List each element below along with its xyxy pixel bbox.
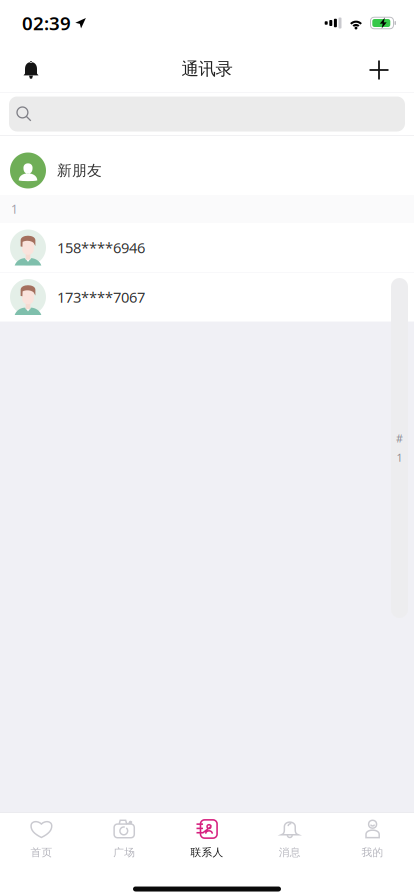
button[interactable]: 消息 xyxy=(248,813,331,862)
button[interactable]: 添加联系人 xyxy=(357,47,401,91)
staticText: 首页 xyxy=(30,846,52,859)
button[interactable]: 索引 xyxy=(391,278,408,618)
staticText: 1 xyxy=(396,450,402,465)
button[interactable]: 173****7067 xyxy=(0,272,414,321)
staticText: 173****7067 xyxy=(57,287,145,307)
staticText: 新朋友 xyxy=(57,161,102,179)
staticText: # xyxy=(396,431,403,445)
button[interactable]: 通知 xyxy=(9,47,53,91)
button[interactable]: 联系人 xyxy=(166,813,248,862)
staticText: 消息 xyxy=(279,846,301,859)
button[interactable]: 158****6946 xyxy=(0,223,414,272)
button[interactable]: 我的 xyxy=(331,813,414,862)
staticText: 联系人 xyxy=(190,846,223,859)
staticText: 我的 xyxy=(362,846,384,859)
button[interactable]: 首页 xyxy=(0,813,83,862)
button[interactable]: 新朋友 xyxy=(0,136,414,195)
staticText: 1 xyxy=(11,201,18,217)
staticText: 广场 xyxy=(113,846,135,859)
staticText: 158****6946 xyxy=(57,238,145,257)
staticText: 02:39 xyxy=(22,11,71,35)
staticText: 通讯录 xyxy=(181,58,232,80)
button[interactable]: 搜索 xyxy=(0,92,414,135)
button[interactable]: 广场 xyxy=(83,813,166,862)
